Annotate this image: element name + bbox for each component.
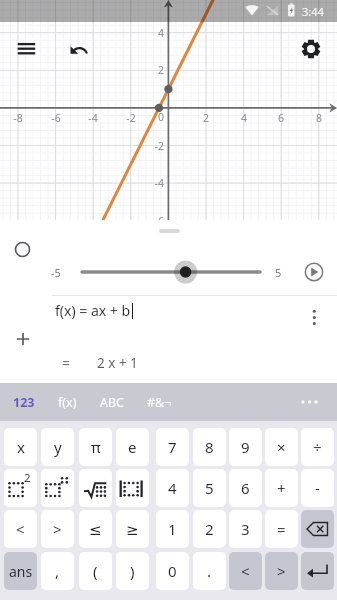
button[interactable]: Add expression [11,327,35,351]
staticText: -6 [144,214,164,228]
staticText: 2 [205,519,214,539]
button[interactable]: ≥ [116,510,149,548]
button[interactable]: More options [305,304,325,328]
button[interactable]: #&¬ [141,383,178,421]
staticText: 123 [13,394,35,411]
button[interactable]: Power [41,469,74,507]
staticText: #&¬ [147,394,172,411]
staticText: 0 [150,110,164,124]
button[interactable]: Square root [79,469,112,507]
button[interactable]: π [79,428,112,466]
button[interactable]: 0 [156,552,189,590]
staticText: > [53,519,62,539]
button[interactable]: 4 [156,469,189,507]
button[interactable]: 6 [229,469,262,507]
button[interactable]: Enter [301,552,334,590]
staticText: 2 [24,470,31,486]
staticText: ≤ [89,521,102,538]
button[interactable]: - [301,469,334,507]
staticText: -5 [51,265,61,280]
button[interactable]: 8 [193,428,226,466]
button[interactable]: < [4,510,37,548]
button[interactable]: × [265,428,298,466]
button[interactable]: + [265,469,298,507]
staticText: - [315,478,320,498]
staticText: f(x) = ax + b [55,301,131,320]
staticText: 4 [233,111,255,125]
button[interactable]: x [4,428,37,466]
button[interactable]: . [193,552,226,590]
button[interactable]: 5 [193,469,226,507]
button[interactable]: y [41,428,74,466]
staticText: ABC [100,394,125,411]
staticText: e [128,437,137,457]
staticText: 7 [168,437,177,457]
staticText: = [277,519,286,539]
button[interactable]: More [296,388,324,416]
button[interactable]: Absolute value [116,469,149,507]
button[interactable]: = [265,510,298,548]
button[interactable]: Menu [14,34,44,64]
button[interactable]: ) [116,552,149,590]
staticText: 3:44 [302,4,324,19]
staticText: y [54,437,62,457]
staticText: 6 [241,478,250,498]
staticText: -2 [144,139,164,153]
staticText: 0 [168,561,177,581]
staticText: ) [130,561,135,581]
staticText: 2 x + 1 [97,354,138,372]
button[interactable]: , [41,552,74,590]
staticText: 4 [168,478,177,498]
staticText: -4 [82,111,104,125]
button[interactable] [80,262,262,282]
button[interactable]: Undo [64,34,94,64]
button[interactable]: e [116,428,149,466]
staticText: -8 [7,111,29,125]
staticText: 9 [241,437,250,457]
button[interactable]: Play [303,261,325,283]
button[interactable]: f(x) [52,383,83,421]
button[interactable]: ( [79,552,112,590]
staticText: x [17,437,25,457]
button[interactable]: 9 [229,428,262,466]
button[interactable]: 3 [229,510,262,548]
button[interactable]: ≤ [79,510,112,548]
staticText: = [62,353,71,372]
button[interactable]: Toggle plot [15,242,30,257]
staticText: 3 [241,519,250,539]
staticText: 4 [144,26,164,40]
staticText: 8 [308,111,330,125]
staticText: . [207,561,212,581]
staticText: ans [9,562,33,581]
button[interactable]: 7 [156,428,189,466]
button[interactable]: 1 [156,510,189,548]
staticText: -2 [120,111,142,125]
staticText: π [91,437,101,457]
staticText: 8 [205,437,214,457]
button[interactable]: ÷ [301,428,334,466]
button[interactable]: ans [4,552,37,590]
staticText: ≥ [126,521,139,538]
staticText: < [16,519,25,539]
button[interactable]: < [229,552,262,590]
staticText: × [277,437,286,457]
staticText: < [241,561,250,581]
button[interactable]: 123 [7,383,41,421]
staticText: , [55,561,60,581]
button[interactable]: 2 [193,510,226,548]
staticText: 1 [168,519,177,539]
button[interactable]: Square [4,469,37,507]
staticText: 2 [144,63,164,77]
staticText: 5 [275,265,282,280]
staticText: ( [93,561,98,581]
button[interactable]: > [265,552,298,590]
staticText: + [277,478,286,498]
staticText: > [277,561,286,581]
staticText: 6 [270,111,292,125]
button[interactable]: Backspace [301,510,334,548]
button[interactable]: Settings [296,34,326,64]
staticText: 2 [195,111,217,125]
staticText: -4 [144,176,164,190]
button[interactable]: > [41,510,74,548]
button[interactable]: ABC [94,383,131,421]
